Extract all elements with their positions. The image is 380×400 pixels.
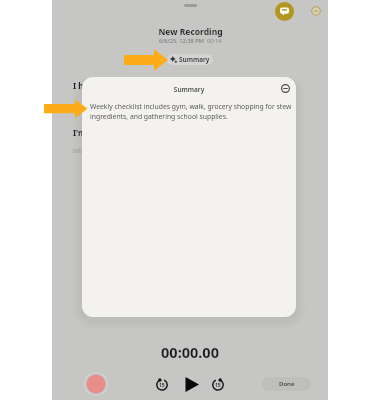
staticText: 6/6/25, 12:38 PM: [159, 37, 204, 45]
staticText: Weekly checklist includes gym, walk, gro…: [90, 102, 293, 121]
button[interactable]: Summary: [167, 54, 213, 65]
staticText: later today: [73, 146, 106, 155]
button[interactable]: Collapse: [311, 6, 321, 16]
staticText: Summary: [82, 85, 296, 94]
button[interactable]: Transcript: [275, 2, 294, 21]
staticText: Done: [279, 380, 295, 388]
staticText: 00:14: [207, 37, 222, 45]
button[interactable]: Skip forward 15 seconds: [211, 377, 225, 391]
button[interactable]: Skip back 15 seconds: [155, 377, 169, 391]
button[interactable]: Collapse summary: [278, 81, 292, 95]
staticText: 00:00.00: [52, 342, 328, 362]
staticText: I have a few things: [73, 80, 149, 91]
button[interactable]: Record: [84, 372, 108, 396]
staticText: 15: [215, 382, 221, 389]
staticText: Summary: [179, 55, 210, 64]
button[interactable]: Done: [262, 377, 311, 391]
staticText: New Recording: [158, 26, 223, 38]
staticText: I'm going to the store: [73, 127, 160, 138]
button[interactable]: Play: [182, 375, 201, 394]
staticText: 15: [159, 382, 165, 389]
